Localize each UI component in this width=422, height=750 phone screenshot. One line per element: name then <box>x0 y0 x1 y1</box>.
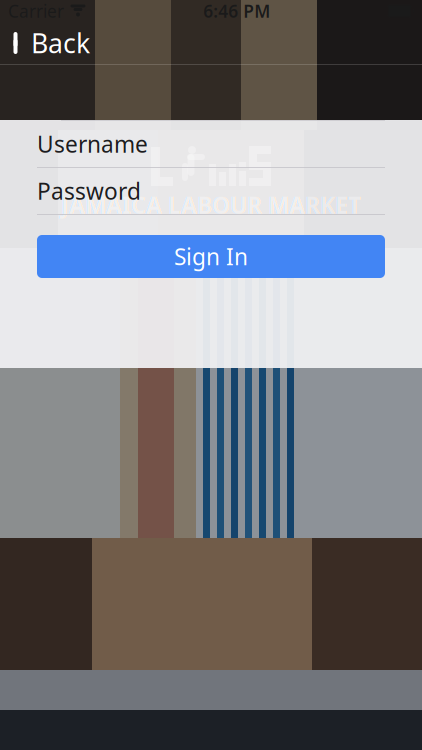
staticText: Carrier <box>8 0 64 22</box>
staticText: Username <box>37 129 148 159</box>
staticText: Back <box>31 25 90 61</box>
staticText: Sign In <box>174 241 248 271</box>
button[interactable]: Sign In <box>37 235 385 278</box>
staticText: JAMAICA LABOUR MARKET <box>61 190 361 220</box>
button[interactable]: Back <box>0 22 102 64</box>
staticText: Password <box>37 176 141 206</box>
staticText: 6:46 PM <box>203 0 270 22</box>
